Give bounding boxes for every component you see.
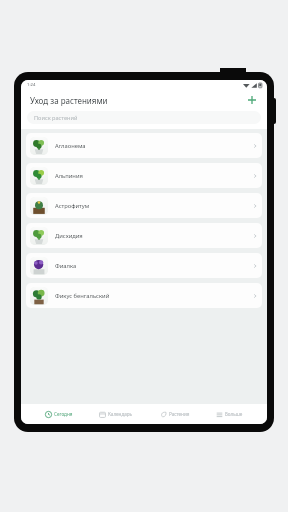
staticText: Уход за растениями [30,95,108,106]
button[interactable]: Фикус бенгальский [26,283,262,308]
button[interactable]: Поиск растений [27,111,261,124]
staticText: Сегодня [54,411,73,417]
button[interactable]: Фиалка [26,253,262,278]
button[interactable]: Сегодня [45,404,73,424]
staticText: Аглаонема [55,142,86,150]
staticText: Фикус бенгальский [55,292,110,300]
staticText: 1:24 [27,82,36,88]
button[interactable]: Альпиния [26,163,262,188]
staticText: Астрофитум [55,202,90,210]
button[interactable]: Добавить растение [244,92,260,108]
staticText: Больше [225,411,243,417]
staticText: Поиск растений [34,114,78,122]
staticText: Растения [169,411,190,417]
button[interactable]: Аглаонема [26,133,262,158]
staticText: Альпиния [55,172,83,180]
button[interactable]: Больше [216,404,243,424]
button[interactable]: Дисхидия [26,223,262,248]
button[interactable]: Астрофитум [26,193,262,218]
staticText: Календарь [108,411,133,417]
staticText: Фиалка [55,262,77,270]
button[interactable]: Календарь [99,404,133,424]
button[interactable]: Растения [160,404,190,424]
staticText: Дисхидия [55,232,83,240]
